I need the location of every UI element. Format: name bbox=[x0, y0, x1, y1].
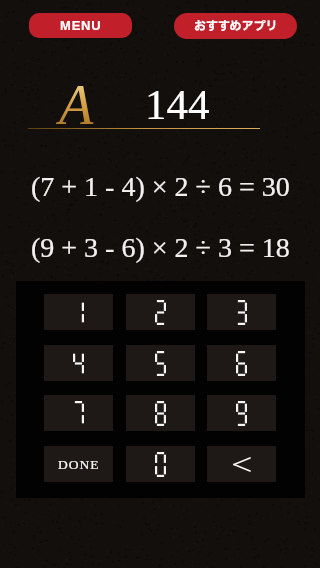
button[interactable]: おすすめアプリ bbox=[174, 13, 297, 39]
staticText: A bbox=[59, 74, 94, 136]
staticText: 144 bbox=[145, 81, 210, 129]
button[interactable] bbox=[44, 395, 113, 431]
button[interactable] bbox=[126, 395, 195, 431]
button[interactable] bbox=[126, 294, 195, 330]
button[interactable] bbox=[207, 446, 276, 482]
button[interactable] bbox=[207, 395, 276, 431]
button[interactable] bbox=[126, 446, 195, 482]
staticText: (9 + 3 - 6) × 2 ÷ 3 = 18 bbox=[31, 232, 290, 263]
staticText: MENU bbox=[60, 18, 102, 33]
button[interactable]: MENU bbox=[29, 13, 132, 38]
button[interactable] bbox=[207, 345, 276, 381]
button[interactable]: DONE bbox=[44, 446, 113, 482]
button[interactable] bbox=[44, 345, 113, 381]
staticText: おすすめアプリ bbox=[194, 17, 278, 35]
staticText: DONE bbox=[58, 457, 100, 472]
button[interactable] bbox=[126, 345, 195, 381]
button[interactable] bbox=[207, 294, 276, 330]
button[interactable] bbox=[44, 294, 113, 330]
staticText: (7 + 1 - 4) × 2 ÷ 6 = 30 bbox=[31, 171, 290, 202]
